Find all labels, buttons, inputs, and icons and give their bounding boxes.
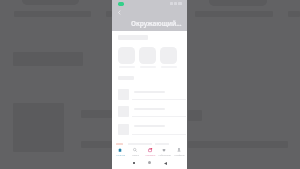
button[interactable]: Home — [148, 161, 151, 164]
button[interactable] — [160, 47, 177, 64]
staticText: Главная — [113, 153, 128, 157]
button[interactable]: Back — [116, 9, 123, 16]
staticText: Избранное — [157, 153, 172, 157]
button[interactable] — [172, 146, 187, 157]
staticText: Корзина — [143, 153, 158, 157]
button[interactable] — [128, 146, 143, 157]
button[interactable] — [143, 146, 158, 157]
staticText: Окружающий... — [131, 19, 182, 28]
button[interactable] — [112, 103, 187, 120]
button[interactable]: Back — [164, 162, 167, 165]
button[interactable] — [139, 47, 156, 64]
staticText: Профиль — [172, 153, 187, 157]
staticText: Поиск — [128, 153, 143, 157]
button[interactable] — [157, 146, 172, 157]
button[interactable] — [118, 47, 135, 64]
button[interactable] — [112, 86, 187, 103]
button[interactable] — [113, 146, 128, 157]
button[interactable] — [112, 121, 187, 138]
